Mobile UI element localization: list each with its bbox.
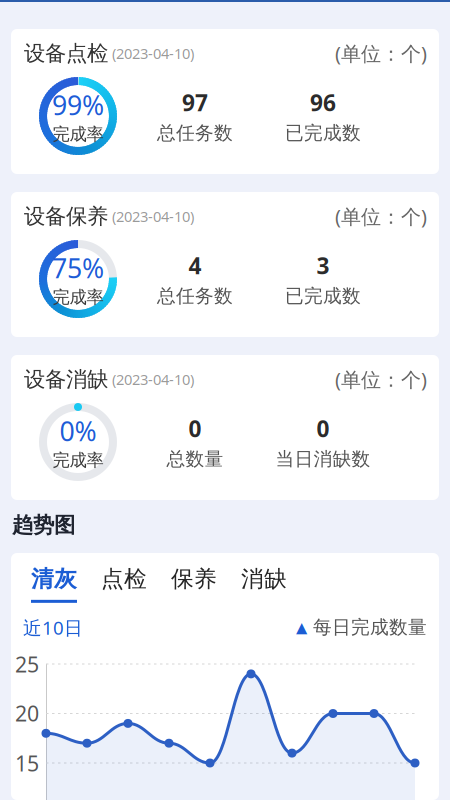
staticText: 总任务数 (157, 285, 233, 307)
staticText: 完成率 (52, 287, 103, 308)
staticText: 96 (310, 87, 336, 118)
staticText: 消缺 (241, 565, 287, 593)
staticText: 0% (59, 413, 96, 448)
button[interactable]: 点检 (93, 565, 155, 603)
staticText: 99% (52, 87, 104, 122)
staticText: 0 (188, 413, 201, 444)
staticText: (2023-04-10) (108, 206, 194, 226)
staticText: (单位：个) (335, 366, 427, 393)
staticText: 近10日 (23, 615, 83, 640)
staticText: 0 (316, 413, 329, 444)
button[interactable]: 消缺 (233, 565, 295, 603)
staticText: 完成率 (52, 450, 103, 471)
staticText: 每日完成数量 (307, 616, 427, 639)
staticText: (2023-04-10) (108, 43, 194, 63)
staticText: 20 (15, 699, 39, 727)
staticText: (单位：个) (335, 40, 427, 67)
button[interactable]: 保养 (163, 565, 225, 603)
staticText: 清灰 (31, 565, 77, 593)
staticText: 设备保养 (24, 203, 108, 229)
staticText: (单位：个) (335, 203, 427, 230)
staticText: 趋势图 (12, 512, 75, 538)
staticText: 设备消缺 (24, 366, 108, 392)
staticText: ▲ (296, 619, 307, 636)
staticText: 已完成数 (285, 122, 361, 144)
button[interactable]: 清灰 (23, 565, 85, 603)
staticText: (2023-04-10) (108, 369, 194, 389)
staticText: 25 (15, 650, 39, 678)
staticText: 3 (316, 250, 329, 281)
staticText: 75% (52, 250, 104, 285)
staticText: 点检 (101, 565, 147, 593)
staticText: 总任务数 (157, 122, 233, 144)
staticText: 4 (188, 250, 201, 281)
staticText: 当日消缺数 (275, 448, 370, 470)
staticText: 总数量 (166, 448, 223, 470)
staticText: 设备点检 (24, 40, 108, 66)
staticText: 保养 (171, 565, 217, 593)
staticText: 已完成数 (285, 285, 361, 307)
staticText: 97 (182, 87, 208, 118)
staticText: 完成率 (52, 124, 103, 145)
staticText: 15 (15, 749, 39, 777)
